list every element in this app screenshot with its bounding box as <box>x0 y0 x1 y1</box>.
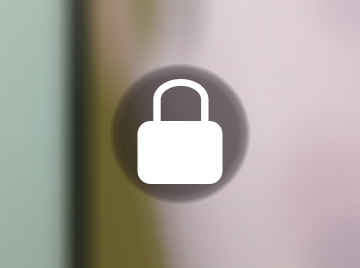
button[interactable]: Content locked <box>109 63 251 205</box>
